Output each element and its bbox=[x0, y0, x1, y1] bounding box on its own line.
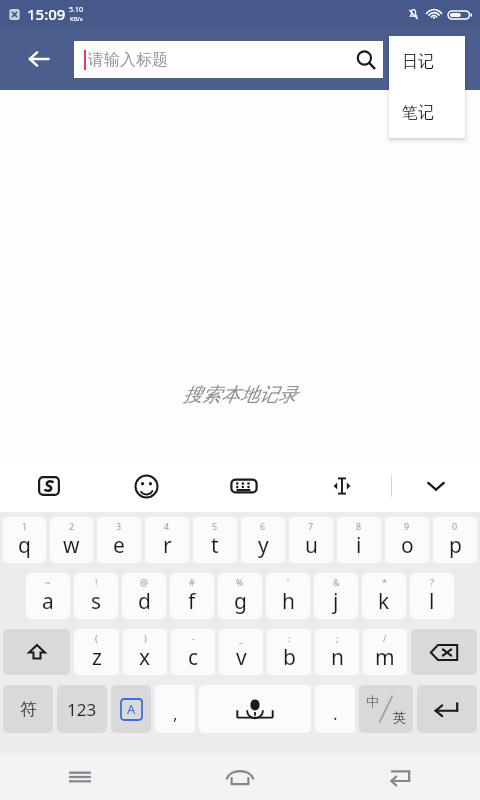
staticText: % bbox=[236, 576, 244, 588]
button[interactable]: - bbox=[171, 629, 215, 675]
staticText: l bbox=[429, 587, 435, 616]
button[interactable]: ~ bbox=[26, 573, 70, 619]
button[interactable]: Hide keyboard bbox=[392, 460, 480, 512]
staticText: - bbox=[192, 632, 195, 644]
staticText: * bbox=[382, 576, 387, 588]
button[interactable]: Home bbox=[160, 753, 320, 800]
button[interactable]: ! bbox=[74, 573, 118, 619]
button[interactable]: 9 bbox=[385, 517, 429, 563]
staticText: h bbox=[282, 587, 295, 616]
button[interactable]: % bbox=[218, 573, 262, 619]
button[interactable]: : bbox=[267, 629, 311, 675]
staticText: 0 bbox=[452, 520, 458, 532]
staticText: ! bbox=[95, 576, 98, 588]
button[interactable]: Language A bbox=[111, 685, 151, 733]
staticText: 9 bbox=[404, 520, 410, 532]
staticText: , bbox=[173, 702, 178, 725]
staticText: 英 bbox=[393, 709, 406, 725]
button[interactable]: 1 bbox=[3, 517, 46, 563]
button[interactable]: 请输入标题 bbox=[74, 41, 383, 78]
staticText: @ bbox=[140, 576, 149, 588]
button[interactable]: ) bbox=[123, 629, 167, 675]
staticText: 请输入标题 bbox=[88, 50, 349, 70]
staticText: c bbox=[188, 643, 199, 672]
button[interactable]: 0 bbox=[433, 517, 477, 563]
staticText: 5 bbox=[212, 520, 218, 532]
button[interactable]: Emoji bbox=[97, 460, 195, 512]
button[interactable]: Backspace bbox=[411, 629, 477, 675]
button[interactable]: Recent apps bbox=[0, 753, 160, 800]
button[interactable]: Back bbox=[320, 753, 480, 800]
staticText: ( bbox=[95, 632, 98, 644]
staticText: j bbox=[333, 587, 339, 616]
staticText: 2 bbox=[69, 520, 75, 532]
button[interactable]: Search bbox=[349, 43, 383, 77]
staticText: n bbox=[331, 643, 344, 672]
staticText: y bbox=[258, 531, 269, 560]
staticText: 123 bbox=[67, 698, 97, 721]
button[interactable]: # bbox=[170, 573, 214, 619]
staticText: 3 bbox=[116, 520, 122, 532]
staticText: 1 bbox=[22, 520, 28, 532]
button[interactable]: 3 bbox=[97, 517, 141, 563]
button[interactable]: Move cursor bbox=[293, 460, 391, 512]
button[interactable]: 4 bbox=[145, 517, 189, 563]
staticText: # bbox=[189, 576, 195, 588]
staticText: u bbox=[305, 531, 318, 560]
button[interactable]: ( bbox=[74, 629, 119, 675]
staticText: g bbox=[234, 587, 247, 616]
staticText: . bbox=[333, 702, 338, 725]
button[interactable]: . bbox=[315, 685, 355, 733]
staticText: e bbox=[113, 531, 125, 560]
staticText: 15:09 bbox=[27, 4, 66, 24]
button[interactable]: 8 bbox=[337, 517, 381, 563]
staticText: r bbox=[163, 531, 172, 560]
staticText: t bbox=[211, 531, 219, 560]
staticText: p bbox=[449, 531, 462, 560]
staticText: ' bbox=[287, 576, 290, 588]
button[interactable]: 6 bbox=[241, 517, 285, 563]
button[interactable]: 5 bbox=[193, 517, 237, 563]
button[interactable]: _ bbox=[219, 629, 263, 675]
button[interactable]: * bbox=[362, 573, 406, 619]
staticText: 笔记 bbox=[402, 103, 434, 123]
staticText: q bbox=[18, 531, 31, 560]
staticText: x bbox=[139, 643, 151, 672]
staticText: ? bbox=[430, 576, 434, 588]
button[interactable]: , bbox=[155, 685, 195, 733]
staticText: KB/s bbox=[70, 15, 83, 23]
button[interactable]: ' bbox=[266, 573, 310, 619]
button[interactable]: 符 bbox=[3, 685, 53, 733]
staticText: : bbox=[288, 632, 291, 644]
staticText: 6 bbox=[260, 520, 266, 532]
staticText: s bbox=[91, 587, 102, 616]
button[interactable]: ; bbox=[315, 629, 359, 675]
button[interactable]: Space, voice input bbox=[199, 685, 311, 733]
button[interactable]: / bbox=[363, 629, 407, 675]
staticText: z bbox=[92, 643, 102, 672]
staticText: 符 bbox=[20, 699, 37, 720]
staticText: d bbox=[138, 587, 151, 616]
button[interactable]: ? bbox=[410, 573, 454, 619]
button[interactable]: 2 bbox=[50, 517, 93, 563]
button[interactable]: 日记 bbox=[389, 36, 465, 87]
staticText: 4 bbox=[164, 520, 170, 532]
button[interactable]: 笔记 bbox=[389, 87, 465, 138]
button[interactable]: Enter bbox=[417, 685, 477, 733]
staticText: ) bbox=[144, 632, 147, 644]
button[interactable]: Shift bbox=[3, 629, 70, 675]
staticText: 8 bbox=[356, 520, 362, 532]
staticText: ~ bbox=[45, 576, 51, 588]
button[interactable]: @ bbox=[122, 573, 166, 619]
staticText: 中 bbox=[366, 693, 379, 709]
staticText: w bbox=[63, 531, 80, 560]
button[interactable]: Keyboard layout bbox=[195, 460, 293, 512]
button[interactable]: Chinese English toggle bbox=[359, 685, 413, 733]
button[interactable]: Back bbox=[16, 36, 62, 82]
staticText: 日记 bbox=[402, 52, 434, 72]
button[interactable]: 123 bbox=[57, 685, 107, 733]
button[interactable]: 7 bbox=[289, 517, 333, 563]
button[interactable]: Sogou input bbox=[0, 460, 97, 512]
staticText: & bbox=[333, 576, 340, 588]
button[interactable]: & bbox=[314, 573, 358, 619]
